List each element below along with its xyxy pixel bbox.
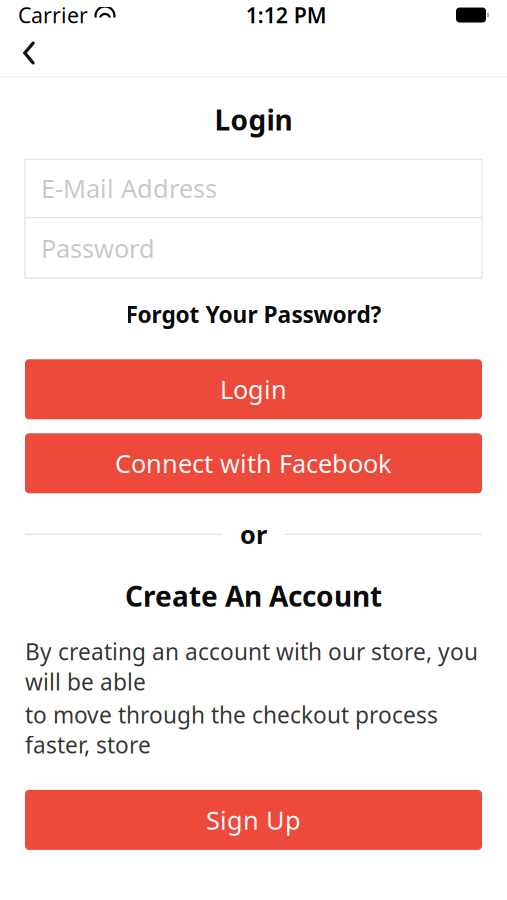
staticText: to move through the checkout process fas… xyxy=(25,700,438,760)
staticText: By creating an account with our store, y… xyxy=(25,636,478,697)
button[interactable]: Login xyxy=(25,359,482,419)
button[interactable]: E-Mail Address xyxy=(25,159,482,217)
button[interactable]: Forgot Your Password? xyxy=(25,290,482,338)
button[interactable]: Password xyxy=(25,218,482,278)
staticText: Login xyxy=(220,372,287,406)
staticText: Create An Account xyxy=(125,577,382,614)
staticText: or xyxy=(240,517,267,551)
button[interactable]: Sign Up xyxy=(25,790,482,850)
staticText: Login xyxy=(214,101,292,138)
button[interactable]: Back xyxy=(2,30,56,76)
staticText: Password xyxy=(41,231,155,265)
staticText: E-Mail Address xyxy=(41,171,217,205)
staticText: Connect with Facebook xyxy=(115,446,392,480)
staticText: 1:12 PM xyxy=(246,1,327,29)
staticText: Sign Up xyxy=(206,803,301,837)
staticText: Forgot Your Password? xyxy=(125,299,381,329)
button[interactable]: Connect with Facebook xyxy=(25,433,482,493)
staticText: Carrier xyxy=(18,1,88,29)
